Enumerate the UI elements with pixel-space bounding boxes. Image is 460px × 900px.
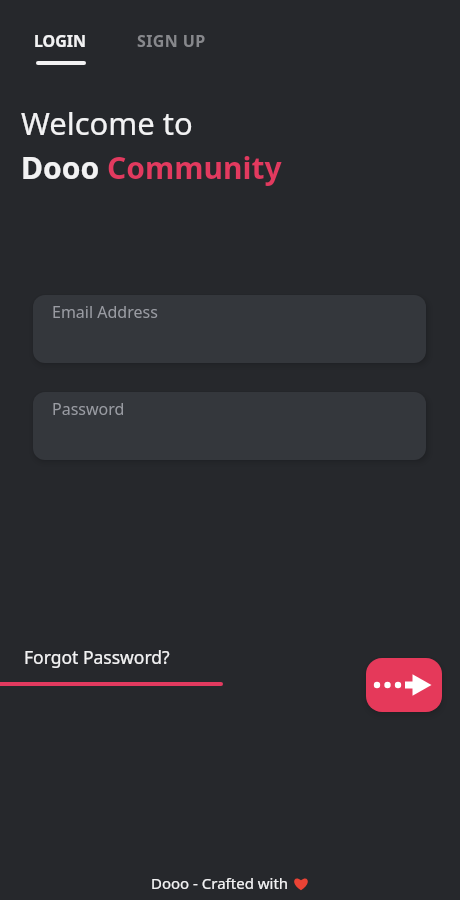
button[interactable]: Forgot Password? bbox=[14, 635, 180, 679]
staticText: Dooo - Crafted with bbox=[151, 873, 293, 893]
staticText: Password bbox=[52, 398, 125, 420]
staticText: Forgot Password? bbox=[24, 645, 170, 669]
staticText: SIGN UP bbox=[137, 30, 206, 52]
button[interactable] bbox=[366, 658, 442, 712]
staticText: Email Address bbox=[52, 301, 158, 323]
button[interactable]: LOGIN bbox=[24, 20, 97, 75]
button[interactable]: Email Address bbox=[33, 295, 426, 363]
staticText: LOGIN bbox=[34, 30, 87, 52]
staticText: Dooo Community bbox=[21, 147, 282, 188]
staticText: Welcome to bbox=[21, 102, 193, 144]
button[interactable]: SIGN UP bbox=[127, 20, 216, 62]
button[interactable]: Password bbox=[33, 392, 426, 460]
